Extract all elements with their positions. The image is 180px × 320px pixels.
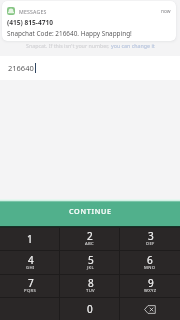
- staticText: 0: [87, 302, 93, 316]
- staticText: 1: [27, 232, 33, 246]
- staticText: MNO: [144, 265, 156, 271]
- staticText: MESSAGES: [19, 8, 47, 15]
- button[interactable]: 1: [0, 228, 60, 250]
- staticText: PQRS: [24, 288, 37, 294]
- staticText: WXYZ: [144, 288, 157, 294]
- button[interactable]: MESSAGES: [2, 1, 176, 41]
- button[interactable]: 4: [0, 251, 60, 274]
- staticText: CONTINUE: [69, 206, 112, 216]
- button[interactable]: 7: [0, 275, 60, 297]
- button[interactable]: 9: [120, 275, 180, 297]
- staticText: 4: [28, 253, 34, 267]
- staticText: JKL: [87, 265, 94, 271]
- staticText: 9: [148, 276, 154, 290]
- staticText: you can change it: [111, 42, 155, 49]
- staticText: DEF: [146, 241, 155, 247]
- other: Backspace: [144, 305, 156, 314]
- staticText: 8: [88, 276, 94, 290]
- button[interactable]: CONTINUE: [0, 202, 180, 226]
- staticText: Snapchat Code: 216640. Happy Snapping!: [7, 29, 132, 38]
- staticText: GHI: [26, 265, 35, 271]
- button[interactable]: 216640: [0, 56, 180, 80]
- staticText: ABC: [85, 241, 95, 247]
- button[interactable]: 5: [60, 251, 120, 274]
- button[interactable]: 3: [120, 228, 180, 250]
- staticText: now: [161, 8, 171, 15]
- staticText: TUV: [86, 288, 95, 294]
- staticText: 7: [28, 276, 34, 290]
- button[interactable]: 8: [60, 275, 120, 297]
- staticText: 6: [147, 253, 153, 267]
- staticText: 2: [87, 229, 93, 243]
- staticText: Snapcat. If this isn't your number,: [26, 42, 109, 49]
- button[interactable]: Backspace: [120, 298, 180, 320]
- button[interactable]: 6: [120, 251, 180, 274]
- button[interactable]: 2: [60, 228, 120, 250]
- staticText: 5: [88, 253, 94, 267]
- staticText: (415) 815-4710: [7, 18, 54, 27]
- staticText: 216640: [8, 63, 34, 73]
- button[interactable]: 0: [60, 298, 120, 320]
- staticText: 3: [148, 229, 154, 243]
